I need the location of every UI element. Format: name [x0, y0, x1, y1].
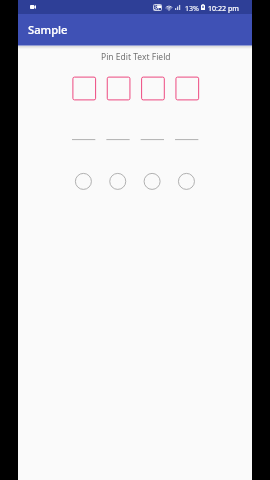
button[interactable]: Sample	[18, 14, 252, 45]
staticText: Sample	[28, 22, 68, 37]
other: Screen recording	[30, 5, 36, 9]
staticText: 13%	[185, 3, 200, 13]
staticText: 10:22 pm	[208, 3, 239, 13]
staticText: Pin Edit Text Field	[101, 51, 171, 63]
button[interactable]: PIN underlines	[72, 134, 198, 145]
button[interactable]: PIN circles	[75, 173, 195, 190]
button[interactable]: PIN boxes	[72, 76, 200, 101]
